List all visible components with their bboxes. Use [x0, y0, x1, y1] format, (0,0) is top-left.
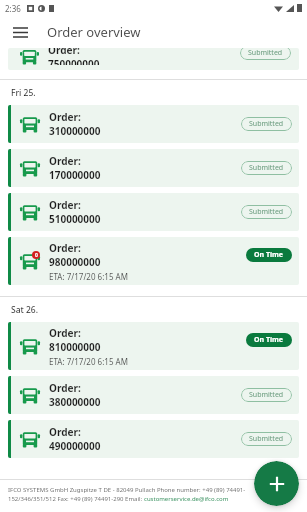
staticText: Order: — [49, 241, 81, 255]
staticText: Submitted — [249, 119, 284, 129]
button[interactable]: Order: — [8, 48, 299, 70]
staticText: On Time — [254, 250, 284, 260]
button[interactable]: 0 — [8, 237, 299, 285]
button[interactable]: Order: — [8, 105, 299, 143]
staticText: Submitted — [249, 390, 284, 400]
staticText: 310000000 — [49, 124, 101, 138]
staticText: ETA: 7/17/20 6:15 AM — [49, 271, 128, 282]
staticText: Order: — [49, 381, 81, 395]
staticText: ETA: 7/17/20 6:15 AM — [49, 356, 128, 367]
button[interactable]: Order: — [8, 376, 299, 414]
staticText: Order: — [48, 48, 80, 57]
button[interactable]: Menu — [6, 18, 34, 46]
staticText: Order: — [49, 326, 81, 340]
staticText: Order: — [49, 425, 81, 439]
button[interactable]: Order: — [8, 193, 299, 231]
staticText: 2:36 — [5, 3, 21, 14]
staticText: On Time — [254, 335, 284, 345]
staticText: Order: — [49, 198, 81, 212]
staticText: 750000000 — [48, 57, 100, 65]
staticText: 510000000 — [49, 212, 101, 226]
staticText: 170000000 — [49, 168, 101, 182]
staticText: 980000000 — [49, 255, 101, 269]
staticText: Order: — [49, 110, 81, 124]
staticText: Submitted — [249, 163, 284, 173]
staticText: Fri 25. — [11, 87, 36, 99]
staticText: Submitted — [249, 434, 284, 444]
staticText: Order: — [49, 154, 81, 168]
button[interactable]: Add order — [254, 461, 299, 506]
button[interactable]: Order: — [8, 149, 299, 187]
staticText: Order overview — [47, 23, 141, 41]
staticText: 152/346/351/512 Fax: +49 (89) 74491-290 … — [8, 495, 144, 503]
button[interactable]: Order: — [8, 322, 299, 370]
button[interactable]: Order: — [8, 420, 299, 458]
staticText: 490000000 — [49, 439, 101, 453]
staticText: 810000000 — [49, 340, 101, 354]
staticText: Sat 26. — [11, 304, 39, 316]
staticText: 380000000 — [49, 395, 101, 409]
staticText: 0 — [35, 252, 38, 259]
staticText: customerservice.de@ifco.com — [144, 495, 229, 503]
staticText: IFCO SYSTEMS GmbH Zugspitze T DE - 82049… — [8, 486, 246, 494]
staticText: Submitted — [248, 48, 283, 58]
staticText: Submitted — [249, 207, 284, 217]
